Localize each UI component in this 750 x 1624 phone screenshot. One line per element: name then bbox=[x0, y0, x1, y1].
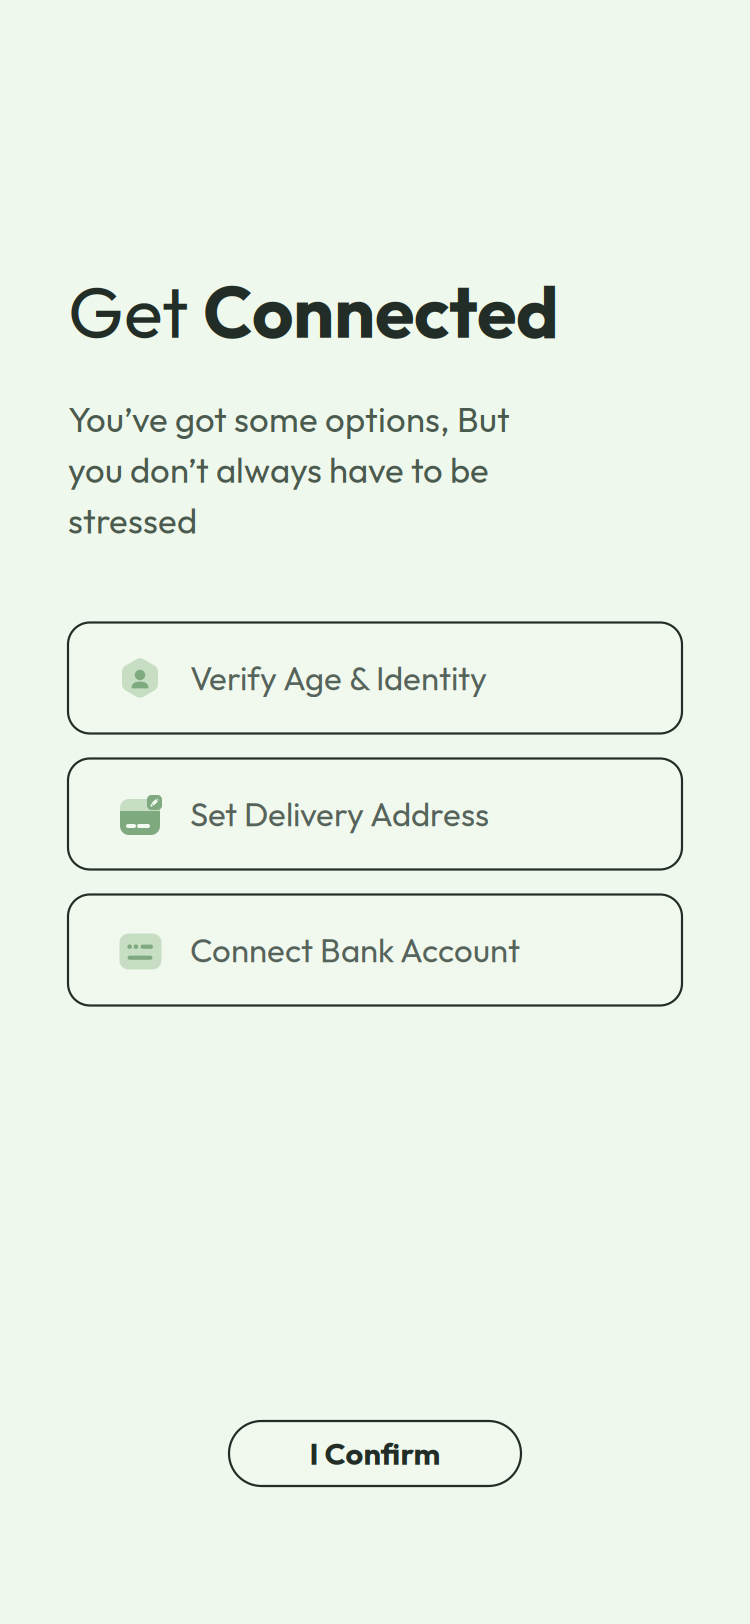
staticText: Get Connected bbox=[68, 267, 559, 355]
button[interactable]: Verify Age & Identity bbox=[68, 622, 682, 733]
staticText: Connect Bank Account bbox=[190, 929, 520, 971]
staticText: Verify Age & Identity bbox=[190, 657, 487, 699]
button[interactable]: I Confirm bbox=[229, 1421, 521, 1486]
staticText: I Confirm bbox=[309, 1434, 440, 1473]
button[interactable]: Set Delivery Address bbox=[68, 758, 682, 869]
staticText: You’ve got some options, But you don’t a… bbox=[68, 397, 510, 542]
button[interactable]: Connect Bank Account bbox=[68, 894, 682, 1005]
staticText: Set Delivery Address bbox=[190, 793, 489, 835]
